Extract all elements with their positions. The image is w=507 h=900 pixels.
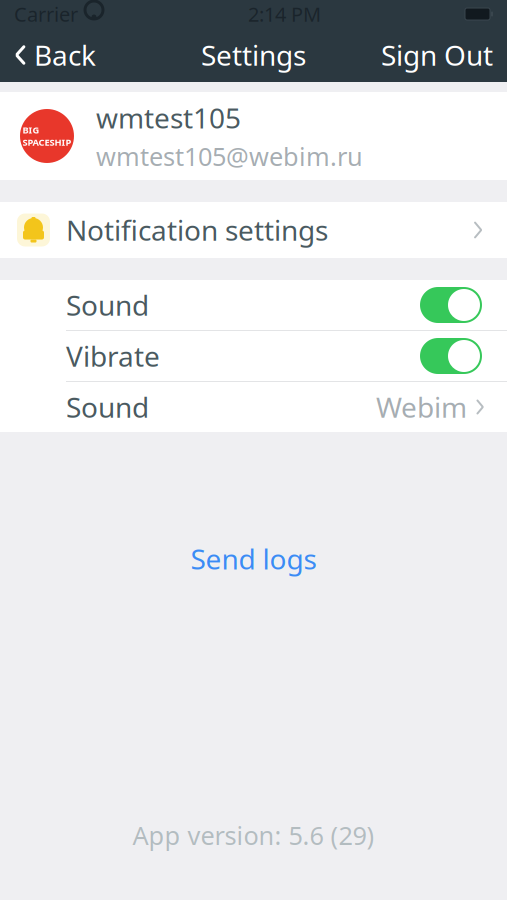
staticText: Carrier [14, 1, 78, 27]
staticText: Vibrate [66, 337, 160, 375]
button[interactable]: Sound [0, 382, 507, 432]
button[interactable]: Vibrate [0, 331, 507, 381]
staticText: wmtest105@webim.ru [96, 139, 363, 173]
button[interactable]: Sign Out [367, 28, 507, 82]
staticText: Sign Out [381, 36, 493, 74]
button[interactable]: Sound [0, 280, 507, 330]
staticText: Settings [201, 36, 306, 74]
staticText: wmtest105 [96, 99, 241, 136]
button[interactable]: BIG SPACESHIP [0, 92, 507, 180]
staticText: Webim [376, 388, 467, 426]
staticText: BIG SPACESHIP [22, 124, 71, 148]
button[interactable]: Back [0, 28, 110, 82]
staticText: Sound [66, 286, 149, 324]
button[interactable]: Send logs [164, 532, 342, 585]
staticText: Back [34, 36, 96, 74]
staticText: Send logs [190, 540, 316, 577]
button[interactable]: Notification settings [0, 202, 507, 258]
staticText: 2:14 PM [248, 1, 321, 27]
staticText: Sound [66, 388, 149, 426]
staticText: App version: 5.6 (29) [132, 818, 374, 852]
staticText: Notification settings [66, 211, 328, 249]
